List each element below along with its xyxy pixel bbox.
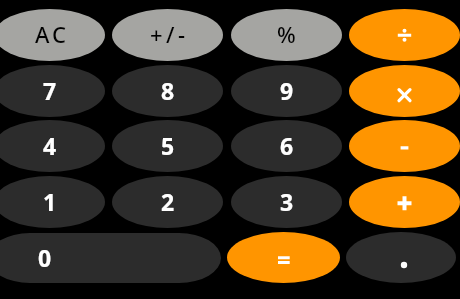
staticText: +/- — [150, 19, 189, 49]
staticText: 8 — [161, 75, 175, 106]
button[interactable]: Equals — [227, 232, 340, 283]
button[interactable]: 3 — [231, 176, 342, 228]
staticText: 9 — [280, 75, 294, 106]
staticText: AC — [35, 19, 70, 49]
button[interactable]: 6 — [231, 120, 342, 172]
button[interactable]: 7 — [0, 65, 105, 117]
staticText: 0 — [38, 242, 52, 273]
staticText: 2 — [161, 186, 175, 217]
staticText: 5 — [161, 130, 175, 161]
button[interactable]: Divide — [349, 9, 460, 61]
button[interactable]: All clear — [0, 9, 105, 61]
button[interactable]: Plus minus sign — [112, 9, 223, 61]
staticText: 7 — [43, 75, 57, 106]
staticText: 4 — [43, 130, 57, 161]
button[interactable]: Percent — [231, 9, 342, 61]
button[interactable]: 1 — [0, 176, 105, 228]
button[interactable]: 9 — [231, 65, 342, 117]
button[interactable]: Plus — [349, 176, 460, 228]
button[interactable]: Multiply — [349, 65, 460, 117]
button[interactable]: Minus — [349, 120, 460, 172]
button[interactable]: 8 — [112, 65, 223, 117]
staticText: 6 — [280, 130, 294, 161]
staticText: 1 — [43, 186, 57, 217]
button[interactable]: 0 — [0, 233, 221, 283]
button[interactable]: 2 — [112, 176, 223, 228]
button[interactable]: 5 — [112, 120, 223, 172]
button[interactable]: Decimal point — [346, 232, 456, 283]
staticText: 3 — [280, 186, 294, 217]
staticText: % — [277, 19, 296, 49]
button[interactable]: 4 — [0, 120, 105, 172]
